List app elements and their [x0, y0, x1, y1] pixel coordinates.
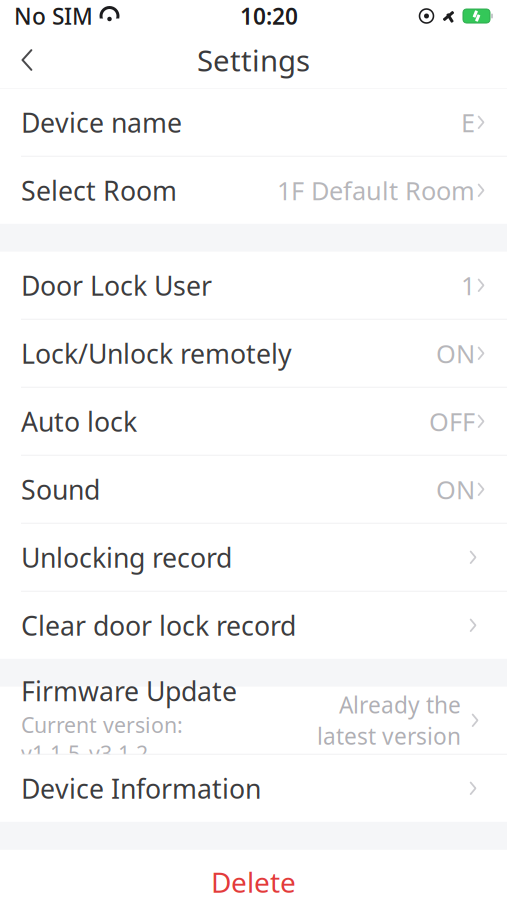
- staticText: Current version: v1.1.5_v3.1.2: [21, 711, 183, 767]
- staticText: Device Information: [21, 771, 261, 806]
- staticText: Auto lock: [21, 404, 137, 439]
- staticText: Device name: [21, 105, 182, 140]
- button[interactable]: Device Information: [0, 755, 507, 822]
- button[interactable]: Auto lock: [0, 388, 507, 455]
- staticText: OFF: [429, 404, 475, 438]
- button[interactable]: Unlocking record: [0, 524, 507, 591]
- staticText: Unlocking record: [21, 540, 232, 575]
- staticText: ON: [436, 336, 475, 370]
- button[interactable]: Delete: [0, 850, 507, 900]
- button[interactable]: Select Room: [0, 157, 507, 224]
- staticText: Firmware Update: [21, 673, 237, 709]
- staticText: Clear door lock record: [21, 608, 296, 643]
- staticText: latest version: [317, 721, 461, 751]
- button[interactable]: Device name: [0, 89, 507, 156]
- staticText: Select Room: [21, 173, 177, 208]
- button[interactable]: Firmware Update: [0, 687, 507, 754]
- button[interactable]: Door Lock User: [0, 252, 507, 319]
- staticText: ON: [436, 472, 475, 506]
- staticText: E: [461, 105, 475, 139]
- staticText: 1F Default Room: [277, 173, 475, 207]
- staticText: Settings: [197, 40, 310, 79]
- staticText: Already the: [339, 690, 461, 720]
- button[interactable]: Sound: [0, 456, 507, 523]
- staticText: No SIM: [14, 1, 93, 31]
- staticText: Door Lock User: [21, 268, 212, 303]
- staticText: 1: [461, 268, 475, 302]
- button[interactable]: Lock/Unlock remotely: [0, 320, 507, 387]
- staticText: Delete: [211, 863, 296, 900]
- button[interactable]: Back: [0, 33, 54, 87]
- staticText: Lock/Unlock remotely: [21, 336, 292, 371]
- button[interactable]: Clear door lock record: [0, 592, 507, 659]
- staticText: 10:20: [240, 1, 298, 31]
- staticText: Sound: [21, 472, 100, 507]
